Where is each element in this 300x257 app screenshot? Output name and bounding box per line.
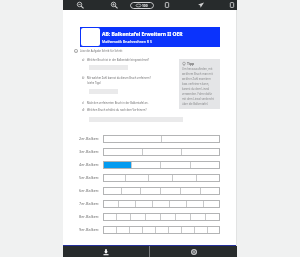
staticText: Welcher Bruch ist in der Balkentafel ein…	[87, 58, 150, 62]
button[interactable]: 7er Balken	[103, 200, 220, 208]
staticText: 7er-Balken:	[79, 201, 100, 206]
button[interactable]: b)	[82, 76, 151, 80]
staticText: Mit welcher Zahl kannst du diesen Bruch …	[87, 76, 151, 80]
button[interactable]: 6er Balken	[103, 187, 220, 195]
button[interactable]: Download	[63, 246, 149, 257]
button[interactable]: Document	[226, 0, 237, 10]
staticText: AB: Balkentafel Erweitern II OER	[102, 31, 183, 38]
staticText: Welchen Bruch erhältst du nach dem Verfe…	[87, 108, 147, 112]
staticText: Mathematik Bruchrechnen R 5	[102, 39, 152, 44]
button[interactable]: 3er Balken	[103, 148, 220, 156]
button[interactable]: Zoom in	[108, 0, 119, 10]
staticText: 100	[142, 4, 148, 8]
button[interactable]: Share	[195, 0, 206, 10]
staticText: 5er-Balken:	[79, 175, 100, 180]
button[interactable]: AB: Balkentafel Erweitern II OER	[80, 27, 220, 47]
staticText: 4er-Balken:	[79, 162, 100, 167]
staticText: Um herauszufinden, mit welchem Bruch man…	[182, 67, 217, 105]
staticText: Tipp	[187, 61, 195, 66]
staticText: c)	[82, 101, 85, 105]
button[interactable]: 2er Balken	[103, 135, 220, 143]
button[interactable]: 9er Balken	[103, 226, 220, 234]
button[interactable]: Page view	[161, 0, 172, 10]
button[interactable]: c)	[82, 101, 149, 105]
button[interactable]: a)	[82, 58, 150, 62]
button[interactable]: Settings	[150, 246, 237, 257]
staticText: (siehe Tipp)	[87, 81, 101, 85]
button[interactable]: 4er Balken	[103, 161, 220, 169]
button[interactable]: d)	[82, 108, 147, 112]
staticText: Male den verfeinerten Bruch in der Balke…	[87, 101, 149, 105]
staticText: d)	[82, 108, 85, 112]
staticText: 6er-Balken:	[79, 188, 100, 193]
button[interactable]: Zoom out	[74, 0, 85, 10]
staticText: 2er-Balken:	[79, 136, 100, 141]
staticText: Löse die Aufgabe Schritt für Schritt	[80, 49, 123, 53]
button[interactable]: 8er Balken	[103, 213, 220, 221]
staticText: 9er-Balken:	[79, 227, 100, 232]
button[interactable]: Tipp	[182, 61, 217, 107]
staticText: a)	[82, 58, 85, 62]
staticText: 8er-Balken:	[79, 214, 100, 219]
staticText: b)	[82, 76, 85, 80]
button[interactable]: Zoom level	[130, 2, 154, 9]
staticText: 3er-Balken:	[79, 149, 100, 154]
button[interactable]: 5er Balken	[103, 174, 220, 182]
